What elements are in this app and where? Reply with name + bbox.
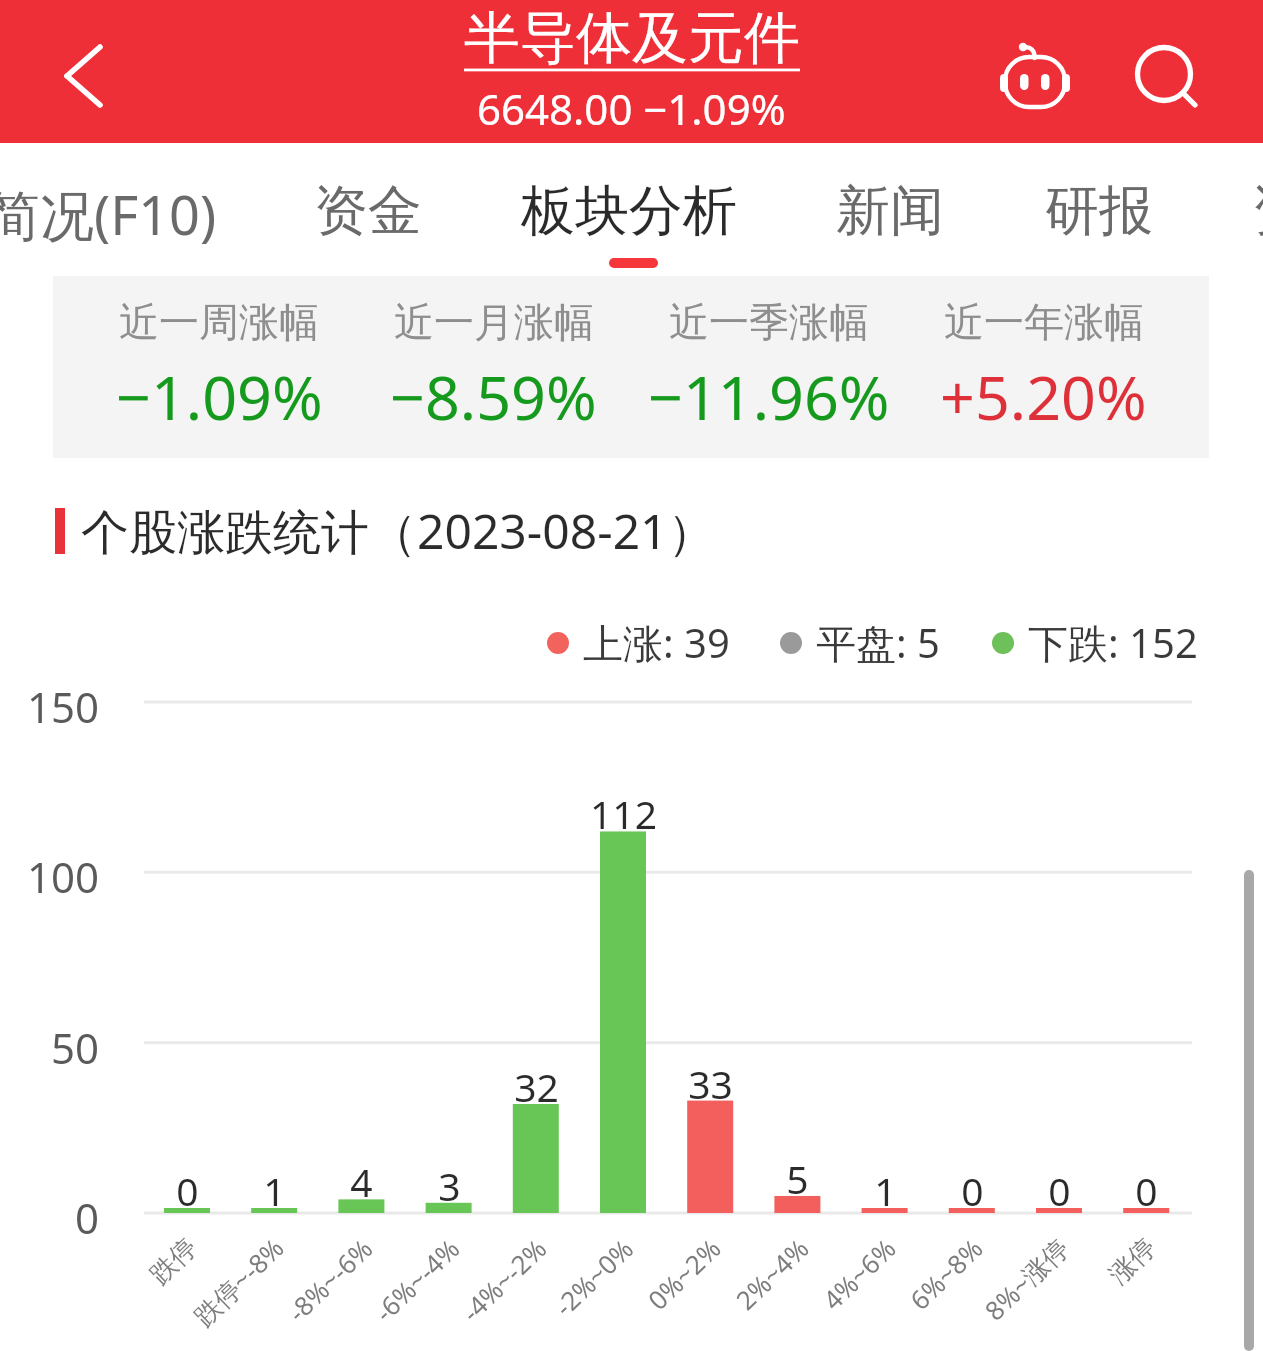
staticText: 150 [27,678,100,735]
staticText: 0 [961,1164,984,1217]
staticText: 研报 [1045,177,1153,245]
staticText: 资金 [314,177,422,245]
staticText: 上涨: 39 [583,615,730,670]
staticText: 近一季涨幅 [669,297,869,347]
staticText: 0 [176,1164,199,1217]
staticText: 近一周涨幅 [119,297,319,347]
button[interactable]: Search [1124,34,1214,124]
staticText: 资金 [1252,177,1263,245]
staticText: 6%~8% [902,1231,989,1317]
button[interactable]: 研报 [949,143,1249,275]
staticText: −8.59% [390,355,597,438]
staticText: 4%~6% [815,1231,902,1317]
staticText: 简况(F10) [0,177,217,251]
staticText: −1.09% [116,355,323,438]
staticText: 跌停~-8% [186,1230,291,1334]
staticText: 近一年涨幅 [944,297,1144,347]
staticText: 0 [1135,1164,1158,1217]
staticText: 近一月涨幅 [394,297,594,347]
staticText: 4 [350,1155,373,1208]
button[interactable]: AI assistant [989,35,1079,125]
staticText: 新闻 [836,177,944,245]
staticText: 0 [1048,1164,1071,1217]
staticText: 5 [786,1152,809,1205]
staticText: 板块分析 [521,177,737,245]
staticText: 100 [27,848,100,905]
staticText: -4%~-2% [454,1231,553,1329]
staticText: −11.96% [648,355,890,438]
staticText: 50 [51,1019,100,1076]
button[interactable]: 新闻 [740,143,1040,275]
staticText: 6648.00 −1.09% [477,80,786,137]
staticText: -6%~-4% [367,1231,466,1329]
staticText: 32 [514,1060,559,1113]
staticText: 8%~涨停 [977,1230,1076,1328]
staticText: 个股涨跌统计（2023-08-21） [81,498,716,563]
staticText: 涨停 [1102,1231,1163,1291]
button[interactable]: 简况(F10) [0,143,251,275]
button[interactable]: 资金 [218,143,518,275]
staticText: 33 [688,1057,733,1110]
button[interactable]: Back [38,31,128,121]
staticText: 3 [438,1159,461,1212]
staticText: +5.20% [940,355,1147,438]
staticText: 1 [874,1164,897,1217]
staticText: 跌停 [143,1231,204,1291]
staticText: -2%~0% [546,1231,640,1323]
button[interactable]: 资金 [1156,143,1263,275]
staticText: 平盘: 5 [816,615,940,670]
staticText: 下跌: 152 [1028,615,1198,670]
staticText: 0%~2% [640,1231,727,1317]
button[interactable]: 板块分析 [479,143,779,275]
staticText: 2%~4% [728,1231,815,1317]
staticText: 0 [75,1189,100,1246]
staticText: 112 [590,787,657,840]
staticText: 半导体及元件 [464,3,800,74]
staticText: 1 [263,1164,286,1217]
staticText: -8%~-6% [280,1231,379,1329]
